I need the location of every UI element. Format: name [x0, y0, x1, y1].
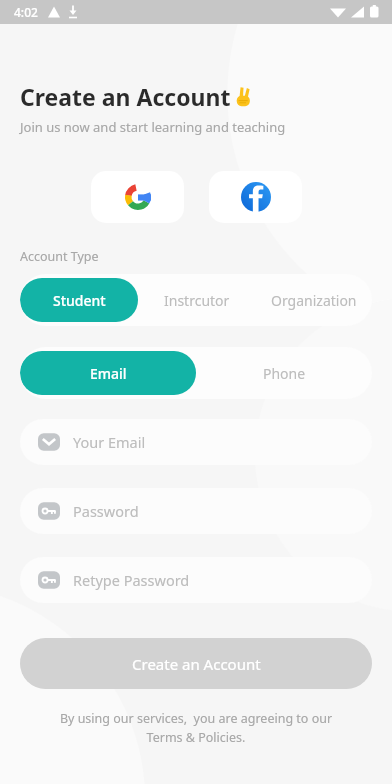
staticText: Password	[73, 501, 139, 521]
button[interactable]: Create an Account	[20, 638, 372, 689]
staticText: Join us now and start learning and teach…	[20, 118, 286, 136]
staticText: Instrcutor	[164, 291, 230, 310]
staticText: Organization	[271, 291, 357, 310]
button[interactable]: Sign up with Google	[91, 171, 184, 223]
button[interactable]: Password	[20, 488, 372, 534]
staticText: Create an Account	[20, 81, 231, 112]
button[interactable]: Student	[20, 278, 138, 322]
staticText: Retype Password	[73, 570, 190, 590]
staticText: Your Email	[73, 432, 146, 452]
button[interactable]: Organization	[255, 278, 372, 322]
staticText: Phone	[263, 364, 306, 383]
staticText: Account Type	[20, 248, 99, 265]
button[interactable]: Your Email	[20, 419, 372, 465]
staticText: 4:02	[14, 4, 38, 20]
staticText: Student	[53, 291, 106, 310]
staticText: By using our services, you are agreeing …	[20, 710, 372, 746]
button[interactable]: Email	[20, 351, 196, 395]
button[interactable]: Retype Password	[20, 557, 372, 603]
button[interactable]: Instrcutor	[138, 278, 255, 322]
staticText: Create an Account	[132, 654, 261, 674]
staticText: Email	[90, 364, 127, 383]
button[interactable]: Sign up with Facebook	[209, 171, 302, 223]
button[interactable]: Phone	[196, 351, 372, 395]
